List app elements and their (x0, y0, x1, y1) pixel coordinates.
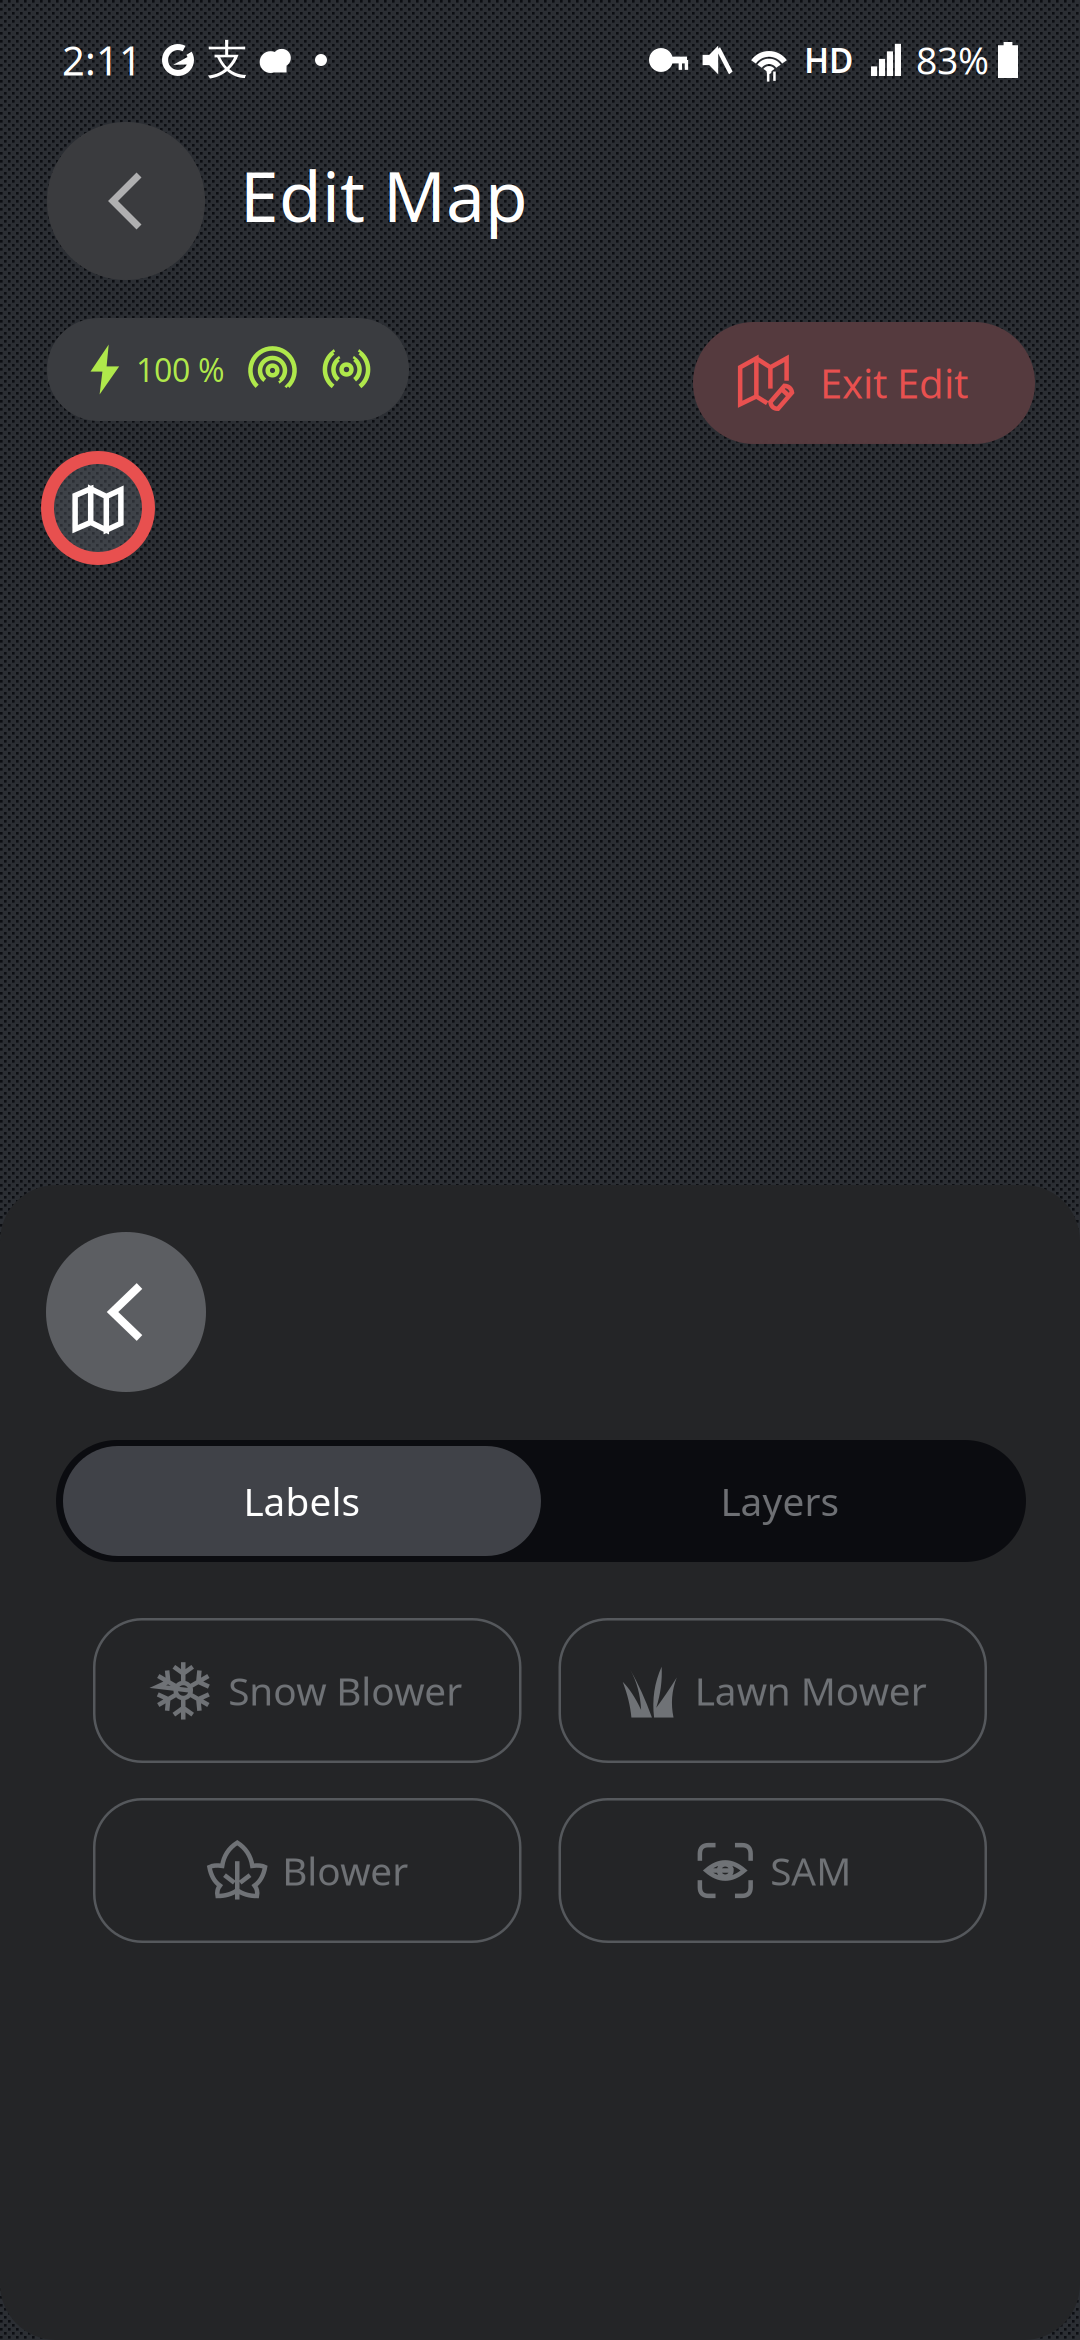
staticText: Labels (243, 1475, 360, 1527)
button[interactable]: SAM (558, 1798, 987, 1943)
staticText: 100 % (136, 348, 225, 391)
staticText: Lawn Mower (695, 1665, 927, 1716)
staticText: Edit Map (240, 149, 528, 241)
staticText: HD (804, 38, 853, 82)
staticText: 83% (916, 35, 989, 85)
button[interactable]: Snow Blower (93, 1618, 521, 1763)
button[interactable]: Exit Edit (693, 322, 1035, 444)
staticText: Layers (720, 1475, 839, 1527)
staticText: 支 (207, 35, 248, 85)
button[interactable]: Layers (541, 1446, 1019, 1556)
staticText: 2:11 (62, 33, 142, 86)
staticText: Exit Edit (820, 356, 968, 409)
button[interactable]: Map layers (41, 451, 155, 565)
button[interactable]: Back (47, 122, 205, 280)
button[interactable]: Lawn Mower (558, 1618, 987, 1763)
button[interactable]: Labels (63, 1446, 541, 1556)
staticText: Blower (282, 1845, 408, 1896)
button[interactable]: Back (46, 1232, 206, 1392)
staticText: SAM (770, 1845, 851, 1896)
button[interactable]: Blower (93, 1798, 521, 1943)
staticText: Snow Blower (228, 1665, 462, 1716)
